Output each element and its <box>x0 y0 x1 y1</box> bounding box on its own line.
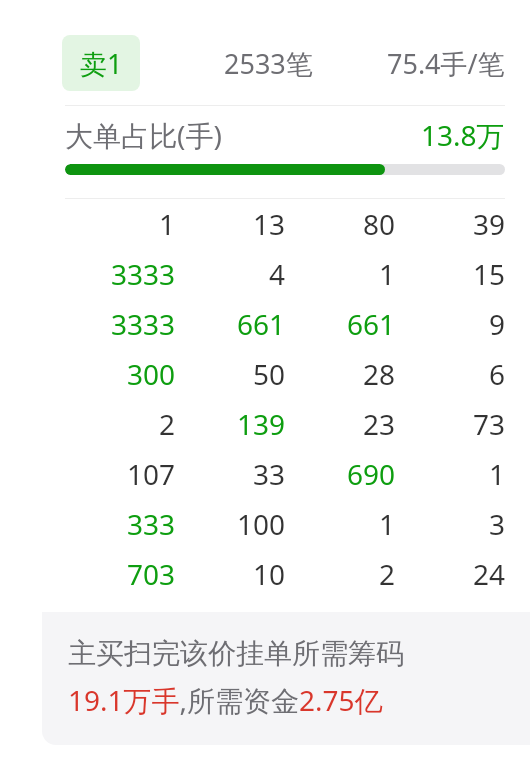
staticText: 661 <box>236 305 285 343</box>
button[interactable]: 2 <box>65 399 505 449</box>
staticText: 13.8万 <box>421 116 505 154</box>
staticText: 1 <box>488 455 505 493</box>
staticText: 9 <box>488 305 505 343</box>
staticText: 690 <box>346 455 395 493</box>
staticText: 75.4手/笔 <box>387 45 505 82</box>
staticText: 大单占比(手) <box>65 116 222 154</box>
button[interactable]: 主买扫完该价挂单所需筹码 <box>42 612 530 745</box>
staticText: 2 <box>378 555 395 593</box>
staticText: 3333 <box>110 255 175 293</box>
staticText: 80 <box>362 205 395 243</box>
staticText: 19.1万手,所需资金2.75亿 <box>68 681 383 719</box>
staticText: 33 <box>252 455 285 493</box>
staticText: 卖1 <box>80 45 123 82</box>
button[interactable]: 卖1 <box>42 21 530 105</box>
staticText: 703 <box>126 555 175 593</box>
staticText: 2 <box>158 405 175 443</box>
button[interactable]: 107 <box>65 449 505 499</box>
staticText: 28 <box>362 355 395 393</box>
staticText: 15 <box>472 255 505 293</box>
button[interactable]: 大单占比(手) <box>65 106 505 164</box>
button[interactable]: 333 <box>65 499 505 549</box>
staticText: 主买扫完该价挂单所需筹码 <box>68 636 404 671</box>
staticText: 73 <box>472 405 505 443</box>
button[interactable]: 703 <box>65 549 505 599</box>
staticText: 10 <box>252 555 285 593</box>
staticText: 107 <box>126 455 175 493</box>
button[interactable]: 3333 <box>65 299 505 349</box>
staticText: 3333 <box>110 305 175 343</box>
staticText: 661 <box>346 305 395 343</box>
staticText: 1 <box>158 205 175 243</box>
staticText: 1 <box>378 255 395 293</box>
button[interactable]: 1 <box>65 199 505 249</box>
staticText: 300 <box>126 355 175 393</box>
staticText: 2533笔 <box>224 45 313 82</box>
staticText: 50 <box>252 355 285 393</box>
staticText: 1 <box>378 505 395 543</box>
staticText: 23 <box>362 405 395 443</box>
staticText: 139 <box>236 405 285 443</box>
staticText: 3 <box>488 505 505 543</box>
button[interactable]: 3333 <box>65 249 505 299</box>
staticText: 333 <box>126 505 175 543</box>
staticText: 4 <box>268 255 285 293</box>
staticText: 39 <box>472 205 505 243</box>
button[interactable]: 300 <box>65 349 505 399</box>
staticText: 100 <box>236 505 285 543</box>
staticText: 24 <box>472 555 505 593</box>
staticText: 6 <box>488 355 505 393</box>
staticText: 13 <box>252 205 285 243</box>
